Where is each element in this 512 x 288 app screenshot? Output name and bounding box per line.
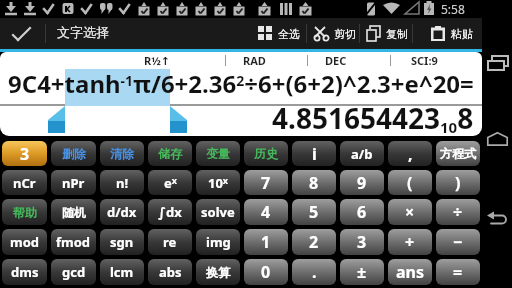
button[interactable]: 1 bbox=[244, 229, 288, 255]
button[interactable]: ans bbox=[388, 259, 432, 285]
staticText: 2 bbox=[309, 231, 319, 253]
staticText: ) bbox=[455, 172, 461, 194]
staticText: 9C4+tanh-1π/6+2.362÷6+(6+2)^2.3+e^20= bbox=[8, 67, 474, 100]
button[interactable]: − bbox=[436, 229, 480, 255]
button[interactable]: img bbox=[196, 229, 240, 255]
staticText: dms bbox=[11, 263, 39, 281]
button[interactable]: 3 bbox=[340, 229, 384, 255]
staticText: ( bbox=[407, 172, 413, 194]
staticText: 5:58 bbox=[441, 1, 465, 17]
staticText: sgn bbox=[110, 233, 134, 251]
button[interactable]: ( bbox=[388, 170, 432, 195]
button[interactable]: sgn bbox=[100, 229, 144, 255]
staticText: fmod bbox=[56, 233, 91, 251]
button[interactable]: × bbox=[388, 199, 432, 225]
button[interactable]: 复制 bbox=[360, 18, 414, 49]
button[interactable]: 8 bbox=[292, 170, 336, 195]
button[interactable]: 换算 bbox=[196, 259, 240, 285]
button[interactable]: 粘贴 bbox=[425, 18, 479, 49]
staticText: a/b bbox=[351, 145, 373, 163]
staticText: 换算 bbox=[206, 265, 230, 280]
staticText: ans bbox=[396, 261, 425, 283]
staticText: 文字选择 bbox=[57, 24, 109, 40]
button[interactable]: 0 bbox=[244, 259, 288, 285]
staticText: , bbox=[408, 143, 413, 165]
button[interactable]: i bbox=[292, 141, 336, 166]
staticText: n! bbox=[116, 174, 129, 192]
staticText: 4 bbox=[261, 201, 271, 223]
staticText: 储存 bbox=[158, 146, 182, 161]
button[interactable]: a/b bbox=[340, 141, 384, 166]
button[interactable]: = bbox=[436, 259, 480, 285]
button[interactable]: 剪切 bbox=[308, 18, 362, 49]
staticText: solve bbox=[201, 203, 235, 221]
button[interactable]: 6 bbox=[340, 199, 384, 225]
staticText: ± bbox=[357, 261, 367, 283]
staticText: d/dx bbox=[107, 203, 137, 221]
button[interactable]: 5 bbox=[292, 199, 336, 225]
staticText: 4.851654423108 bbox=[272, 99, 474, 136]
button[interactable]: gcd bbox=[51, 259, 96, 285]
button[interactable]: re bbox=[148, 229, 192, 255]
button[interactable]: ÷ bbox=[436, 199, 480, 225]
button[interactable]: d/dx bbox=[100, 199, 144, 225]
staticText: 10x bbox=[208, 174, 229, 192]
staticText: 6 bbox=[357, 201, 367, 223]
staticText: ∫dx bbox=[158, 203, 182, 221]
staticText: ÷ bbox=[453, 201, 463, 223]
staticText: 方程式 bbox=[440, 146, 476, 161]
button[interactable]: solve bbox=[196, 199, 240, 225]
button[interactable]: 方程式 bbox=[436, 141, 480, 166]
button[interactable]: + bbox=[388, 229, 432, 255]
staticText: RAD bbox=[243, 53, 266, 68]
button[interactable]: fmod bbox=[51, 229, 96, 255]
button[interactable]: 帮助 bbox=[2, 199, 47, 225]
staticText: . bbox=[312, 261, 317, 283]
staticText: 剪切 bbox=[334, 27, 356, 41]
button[interactable]: 9 bbox=[340, 170, 384, 195]
staticText: + bbox=[405, 231, 415, 253]
button[interactable]: , bbox=[388, 141, 432, 166]
button[interactable]: . bbox=[292, 259, 336, 285]
button[interactable]: 3 bbox=[2, 141, 47, 166]
button[interactable]: ) bbox=[436, 170, 480, 195]
button[interactable]: ± bbox=[340, 259, 384, 285]
staticText: 8 bbox=[309, 172, 319, 194]
staticText: gcd bbox=[62, 263, 86, 281]
button[interactable]: lcm bbox=[100, 259, 144, 285]
button[interactable] bbox=[482, 200, 512, 236]
button[interactable]: 7 bbox=[244, 170, 288, 195]
button[interactable]: 储存 bbox=[148, 141, 192, 166]
button[interactable]: ∫dx bbox=[148, 199, 192, 225]
button[interactable]: n! bbox=[100, 170, 144, 195]
button[interactable]: 变量 bbox=[196, 141, 240, 166]
button[interactable]: 清除 bbox=[100, 141, 144, 166]
staticText: abs bbox=[159, 263, 182, 281]
button[interactable]: 2 bbox=[292, 229, 336, 255]
staticText: 7 bbox=[261, 172, 271, 194]
button[interactable]: 10x bbox=[196, 170, 240, 195]
staticText: 粘贴 bbox=[451, 27, 473, 41]
button[interactable]: 随机 bbox=[51, 199, 96, 225]
staticText: 3 bbox=[357, 231, 367, 253]
button[interactable]: 全选 bbox=[252, 18, 306, 49]
staticText: nCr bbox=[13, 174, 36, 192]
button[interactable]: nCr bbox=[2, 170, 47, 195]
button[interactable]: nPr bbox=[51, 170, 96, 195]
staticText: 随机 bbox=[62, 205, 86, 220]
button[interactable] bbox=[482, 123, 512, 155]
button[interactable]: 历史 bbox=[244, 141, 288, 166]
button[interactable] bbox=[0, 18, 44, 49]
button[interactable]: dms bbox=[2, 259, 47, 285]
staticText: 变量 bbox=[206, 146, 230, 161]
staticText: 全选 bbox=[278, 27, 300, 41]
button[interactable] bbox=[482, 44, 512, 82]
staticText: 历史 bbox=[254, 146, 278, 161]
staticText: 清除 bbox=[110, 146, 134, 161]
button[interactable]: mod bbox=[2, 229, 47, 255]
button[interactable]: abs bbox=[148, 259, 192, 285]
button[interactable]: ex bbox=[148, 170, 192, 195]
staticText: 1 bbox=[261, 231, 271, 253]
button[interactable]: 4 bbox=[244, 199, 288, 225]
button[interactable]: 删除 bbox=[51, 141, 96, 166]
